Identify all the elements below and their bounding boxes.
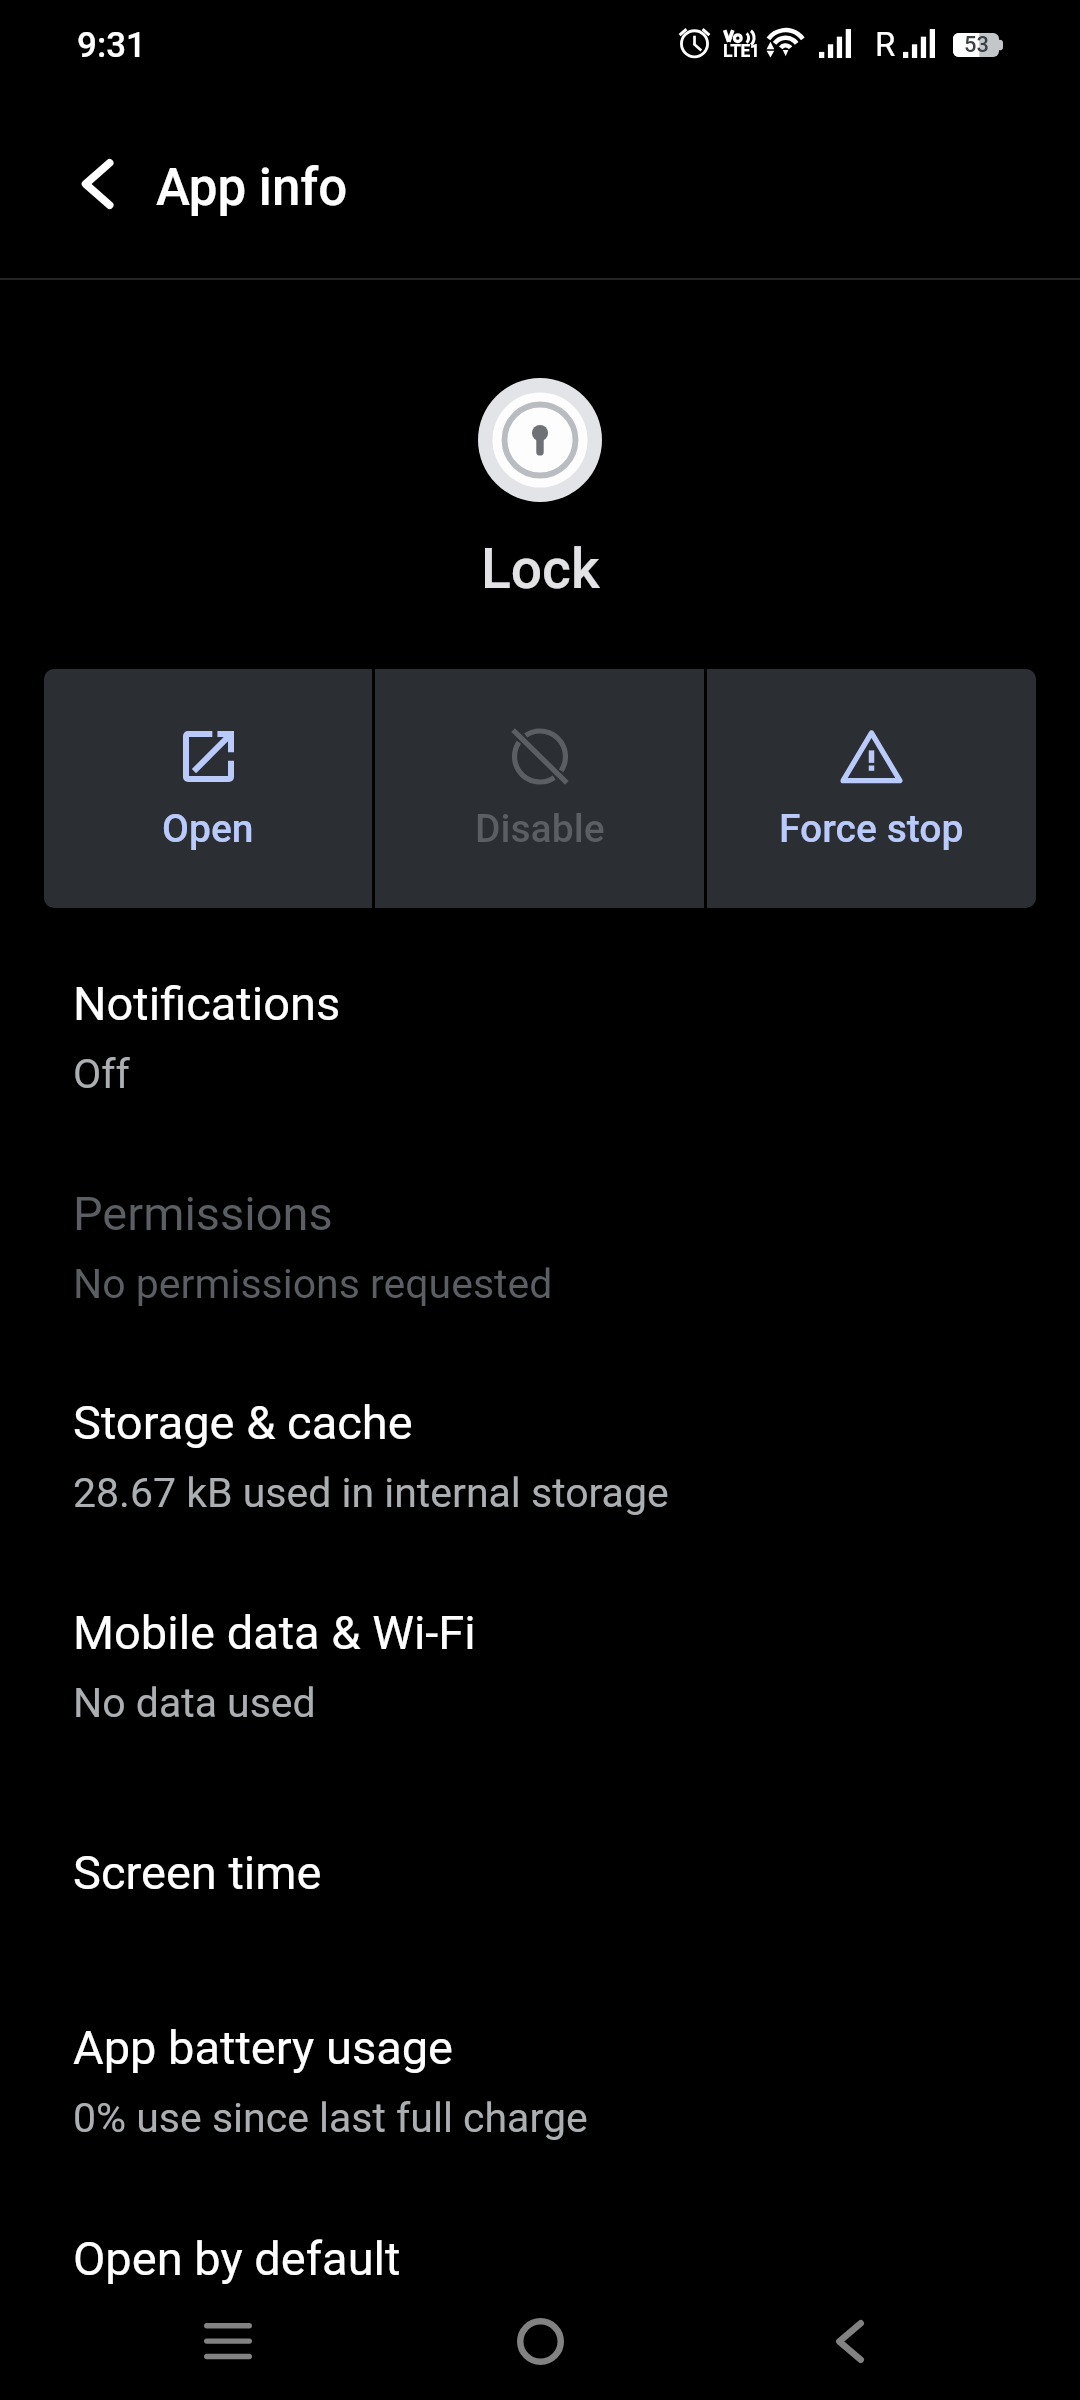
staticText: 28.67 kB used in internal storage: [73, 1469, 669, 1517]
staticText: Off: [73, 1050, 130, 1098]
button[interactable]: Back: [55, 142, 139, 226]
staticText: No permissions requested: [73, 1260, 553, 1308]
staticText: No data used: [73, 1679, 316, 1727]
staticText: Open: [162, 806, 254, 852]
staticText: App battery usage: [73, 2020, 454, 2075]
staticText: Disable: [475, 806, 605, 852]
button[interactable]: Storage & cache: [0, 1379, 1080, 1539]
button[interactable]: Mobile data & Wi-Fi: [0, 1589, 1080, 1749]
button[interactable]: Permissions: [0, 1170, 1080, 1330]
button[interactable]: Home: [450, 2283, 630, 2400]
staticText: Mobile data & Wi-Fi: [73, 1605, 476, 1660]
staticText: Open by default: [73, 2231, 401, 2286]
staticText: Storage & cache: [73, 1395, 413, 1450]
staticText: LTE1: [723, 41, 760, 62]
staticText: Screen time: [73, 1845, 322, 1900]
button[interactable]: Disable: [375, 669, 704, 908]
staticText: Lock: [481, 537, 600, 601]
staticText: 0% use since last full charge: [73, 2094, 588, 2142]
staticText: 9:31: [77, 25, 146, 66]
staticText: R: [875, 25, 896, 64]
button[interactable]: Open by default: [0, 2215, 1080, 2323]
button[interactable]: Recent apps: [138, 2283, 318, 2400]
button[interactable]: App battery usage: [0, 2004, 1080, 2164]
button[interactable]: Open: [44, 669, 372, 908]
button[interactable]: Notifications: [0, 960, 1080, 1120]
button[interactable]: Back: [760, 2283, 940, 2400]
staticText: Permissions: [73, 1186, 333, 1241]
staticText: Notifications: [73, 976, 341, 1031]
staticText: 53: [964, 32, 990, 58]
button[interactable]: Screen time: [0, 1829, 1080, 1937]
staticText: Force stop: [779, 806, 964, 852]
staticText: App info: [156, 158, 348, 218]
button[interactable]: Force stop: [707, 669, 1036, 908]
